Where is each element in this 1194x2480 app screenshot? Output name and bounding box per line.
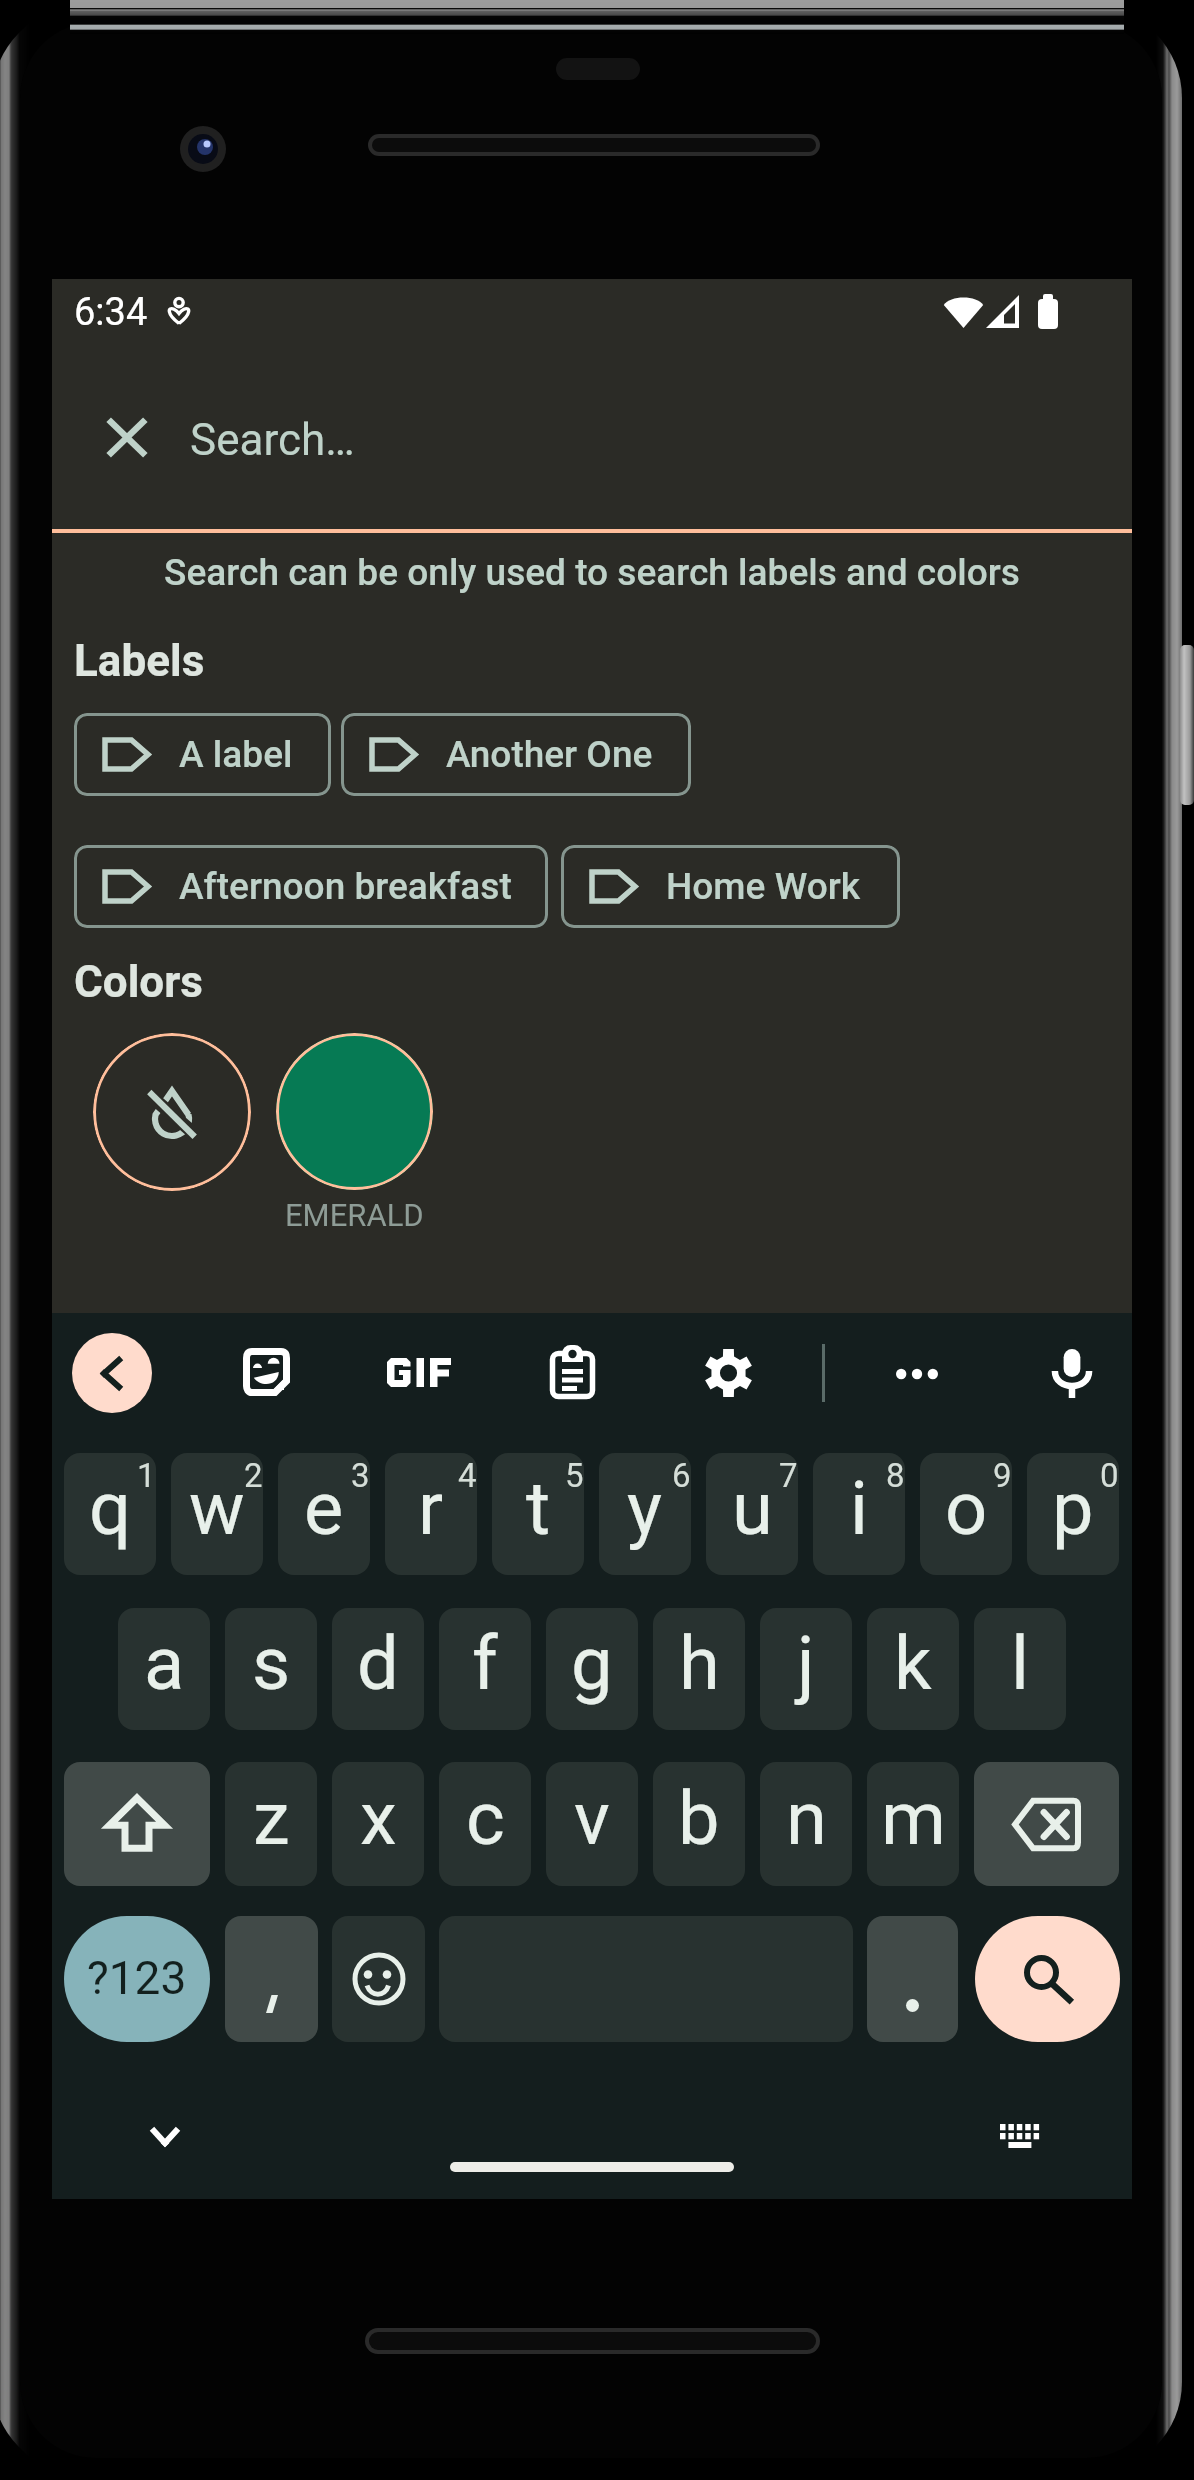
staticText: m (881, 1775, 946, 1862)
staticText: z (253, 1775, 290, 1862)
button[interactable]: GIF (378, 1333, 460, 1411)
staticText: Another One (446, 733, 653, 776)
staticText: h (679, 1620, 720, 1707)
button[interactable]: Clipboard (532, 1332, 612, 1412)
button[interactable]: A label (74, 713, 331, 796)
staticText: f (472, 1620, 498, 1707)
button[interactable]: Another One (341, 713, 691, 796)
button[interactable]: l (974, 1608, 1066, 1730)
button[interactable]: q (64, 1453, 156, 1575)
button[interactable]: n (760, 1762, 852, 1886)
button[interactable]: Emoji (332, 1916, 425, 2042)
button[interactable]: e (278, 1453, 370, 1575)
button[interactable]: j (760, 1608, 852, 1730)
staticText: u (732, 1465, 773, 1552)
button[interactable]: Afternoon breakfast (74, 845, 548, 928)
staticText: 7 (779, 1456, 798, 1495)
button[interactable]: o (920, 1453, 1012, 1575)
staticText: a (144, 1620, 185, 1707)
button[interactable]: Stickers (226, 1332, 306, 1412)
button[interactable]: c (439, 1762, 531, 1886)
button[interactable]: s (225, 1608, 317, 1730)
staticText: t (526, 1465, 551, 1552)
button[interactable]: Home Work (561, 845, 900, 928)
staticText: ?123 (87, 1951, 187, 2005)
button[interactable]: y (599, 1453, 691, 1575)
staticText: l (1011, 1620, 1029, 1707)
staticText: r (418, 1465, 444, 1552)
staticText: 8 (886, 1456, 905, 1495)
staticText: i (850, 1465, 868, 1552)
staticText: EMERALD (285, 1197, 424, 1233)
button[interactable]: d (332, 1608, 424, 1730)
staticText: j (797, 1620, 815, 1707)
button[interactable]: b (653, 1762, 745, 1886)
button[interactable]: Emerald (276, 1033, 433, 1190)
staticText: q (89, 1465, 132, 1552)
button[interactable]: m (867, 1762, 959, 1886)
button[interactable]: Switch keyboard (985, 2101, 1055, 2171)
button[interactable]: p (1027, 1453, 1119, 1575)
button[interactable]: h (653, 1608, 745, 1730)
staticText: 3 (351, 1456, 370, 1495)
button[interactable]: Voice input (1032, 1333, 1112, 1413)
staticText: 1 (137, 1456, 156, 1495)
staticText: w (189, 1465, 245, 1552)
staticText: 4 (458, 1456, 477, 1495)
button[interactable]: Back (72, 1333, 152, 1413)
staticText: Search can be only used to search labels… (164, 551, 1020, 594)
button[interactable]: Backspace (974, 1762, 1119, 1886)
staticText: g (571, 1620, 613, 1707)
staticText: A label (179, 733, 293, 776)
staticText: 5 (565, 1456, 584, 1495)
button[interactable]: u (706, 1453, 798, 1575)
staticText: p (1052, 1465, 1094, 1552)
button[interactable]: ?123 (64, 1916, 210, 2042)
staticText: 2 (244, 1456, 263, 1495)
button[interactable]: t (492, 1453, 584, 1575)
button[interactable]: f (439, 1608, 531, 1730)
staticText: k (894, 1620, 932, 1707)
staticText: 6 (672, 1456, 691, 1495)
button[interactable]: x (332, 1762, 424, 1886)
staticText: 9 (993, 1456, 1012, 1495)
button[interactable]: Period (867, 1916, 958, 2042)
button[interactable]: i (813, 1453, 905, 1575)
button[interactable]: Search (975, 1916, 1120, 2042)
staticText: y (627, 1465, 663, 1552)
button[interactable]: z (225, 1762, 317, 1886)
staticText: 6:34 (74, 290, 148, 335)
staticText: Afternoon breakfast (179, 865, 512, 908)
staticText: 0 (1100, 1456, 1119, 1495)
staticText: x (360, 1775, 397, 1862)
staticText: Search… (190, 414, 355, 466)
staticText: n (786, 1775, 827, 1862)
button[interactable]: Hide keyboard (130, 2102, 200, 2172)
button[interactable]: More options (877, 1334, 957, 1414)
button[interactable]: Shift (64, 1762, 210, 1886)
staticText: Labels (74, 635, 205, 687)
staticText: Home Work (666, 865, 861, 908)
button[interactable]: Close search (89, 399, 165, 475)
button[interactable]: No color (93, 1033, 251, 1191)
button[interactable]: r (385, 1453, 477, 1575)
button[interactable]: w (171, 1453, 263, 1575)
staticText: v (574, 1775, 610, 1862)
button[interactable]: Comma (225, 1916, 318, 2042)
staticText: Colors (74, 956, 203, 1008)
staticText: d (357, 1620, 399, 1707)
button[interactable]: v (546, 1762, 638, 1886)
staticText: e (304, 1465, 344, 1552)
staticText: o (945, 1465, 988, 1552)
staticText: c (466, 1775, 505, 1862)
button[interactable]: g (546, 1608, 638, 1730)
staticText: s (252, 1620, 291, 1707)
button[interactable]: k (867, 1608, 959, 1730)
button[interactable]: a (118, 1608, 210, 1730)
staticText: b (678, 1775, 720, 1862)
button[interactable]: Settings (688, 1333, 768, 1413)
